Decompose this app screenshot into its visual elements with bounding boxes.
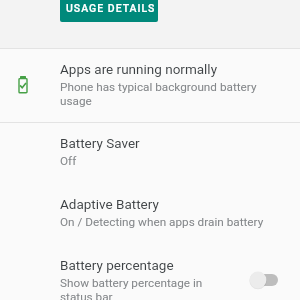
staticText: Off: [60, 154, 77, 168]
staticText: Battery Saver: [60, 135, 140, 151]
staticText: Apps are running normally: [60, 61, 218, 77]
button[interactable]: Battery percentage toggle: [246, 269, 286, 291]
staticText: Phone has typical background battery usa…: [60, 80, 286, 108]
staticText: On / Detecting when apps drain battery: [60, 215, 264, 229]
staticText: Show battery percentage in status bar: [60, 276, 212, 300]
button[interactable]: Adaptive Battery: [0, 184, 300, 245]
staticText: Battery percentage: [60, 257, 174, 273]
staticText: USAGE DETAILS: [66, 2, 156, 14]
button[interactable]: Apps are running normally: [0, 49, 300, 122]
staticText: Adaptive Battery: [60, 196, 159, 212]
button[interactable]: Battery percentage: [0, 245, 300, 300]
button[interactable]: Battery Saver: [0, 123, 300, 184]
button[interactable]: USAGE DETAILS: [60, 0, 158, 22]
